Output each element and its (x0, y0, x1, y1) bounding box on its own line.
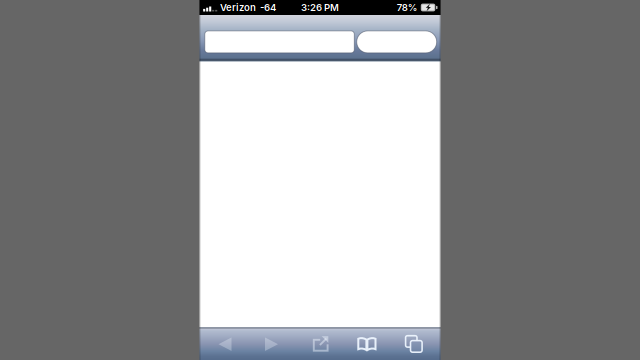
button[interactable]: Search (357, 31, 437, 53)
button[interactable]: Back (205, 329, 245, 360)
staticText: Verizon (220, 2, 256, 13)
staticText: 78% (397, 2, 418, 13)
button[interactable]: Tabs (394, 329, 434, 360)
staticText: 3:26 PM (301, 2, 339, 13)
button[interactable]: Share (301, 328, 341, 359)
button[interactable]: Bookmarks (347, 328, 387, 359)
button[interactable]: Forward (251, 329, 291, 360)
staticText: -64 (260, 2, 276, 13)
button[interactable]: Address (205, 31, 354, 53)
